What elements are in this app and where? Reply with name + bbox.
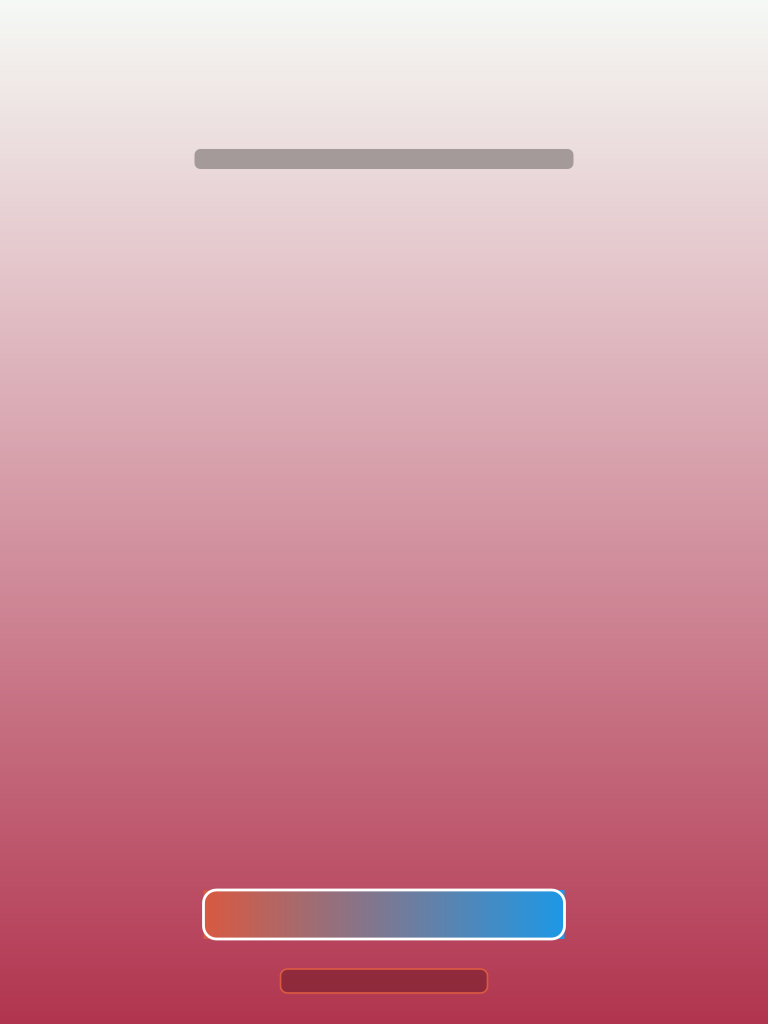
button[interactable]: Secondary action <box>280 969 487 993</box>
button[interactable]: Primary action <box>203 890 564 939</box>
